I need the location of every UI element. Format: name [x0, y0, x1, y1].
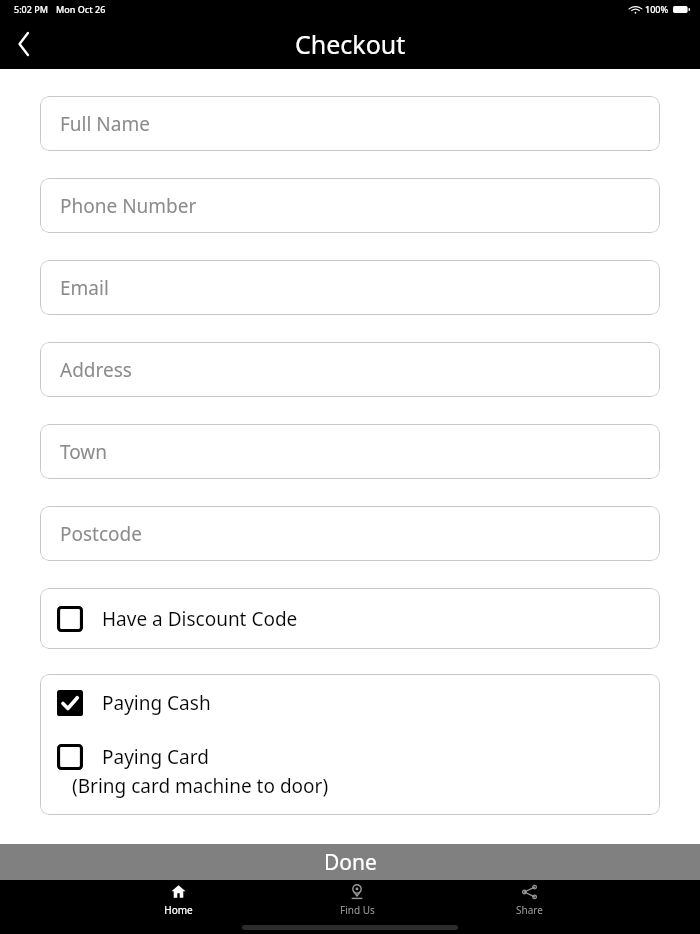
button[interactable]: Paying Cash [40, 674, 660, 732]
staticText: 5:02 PM [14, 3, 48, 15]
button[interactable]: Paying Card [40, 732, 660, 815]
staticText: Phone Number [60, 193, 197, 219]
staticText: Address [60, 357, 132, 383]
staticText: Mon Oct 26 [56, 3, 106, 15]
button[interactable]: Back [0, 20, 48, 68]
staticText: 100% [645, 3, 669, 15]
staticText: Home [164, 903, 193, 917]
button[interactable]: Share [443, 885, 615, 917]
button[interactable]: Address [40, 342, 660, 397]
staticText: Postcode [60, 521, 142, 547]
staticText: (Bring card machine to door) [72, 773, 329, 799]
staticText: Find Us [340, 903, 375, 917]
staticText: Checkout [295, 27, 406, 61]
button[interactable]: Postcode [40, 506, 660, 561]
button[interactable]: Full Name [40, 96, 660, 151]
staticText: Paying Card [102, 744, 209, 770]
staticText: Share [516, 903, 543, 917]
button[interactable]: Town [40, 424, 660, 479]
button[interactable]: Email [40, 260, 660, 315]
staticText: Full Name [60, 111, 150, 137]
button[interactable]: Find Us [271, 884, 443, 917]
button[interactable]: Have a Discount Code [40, 588, 660, 649]
button[interactable]: Phone Number [40, 178, 660, 233]
button[interactable]: Home [86, 884, 271, 917]
staticText: Paying Cash [102, 690, 211, 716]
staticText: Town [60, 439, 108, 465]
staticText: Done [324, 848, 377, 877]
staticText: Email [60, 275, 109, 301]
button[interactable]: Done [0, 844, 700, 880]
staticText: Have a Discount Code [102, 606, 298, 632]
